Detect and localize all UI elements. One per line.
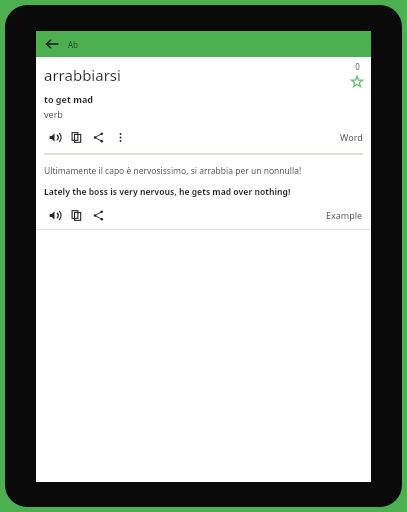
button[interactable]: Back [42,34,62,54]
staticText: 0 [355,61,360,72]
staticText: verb [44,108,63,120]
staticText: Example [326,209,363,221]
staticText: arrabbiarsi [44,65,121,85]
staticText: Ab [68,39,79,50]
button[interactable]: Favorite [350,75,364,89]
button[interactable]: More options [110,127,130,147]
button[interactable]: Share [88,205,108,225]
button[interactable]: Copy [66,205,86,225]
button[interactable]: Listen [44,205,64,225]
staticText: to get mad [44,93,94,105]
button[interactable]: Listen [44,127,64,147]
staticText: Ultimamente il capo è nervosissimo, si a… [44,165,302,177]
staticText: Lately the boss is very nervous, he gets… [44,186,291,198]
button[interactable]: Copy [66,127,86,147]
button[interactable]: arrabbiarsi [36,57,371,230]
button[interactable]: Share [88,127,108,147]
staticText: Word [340,131,363,143]
